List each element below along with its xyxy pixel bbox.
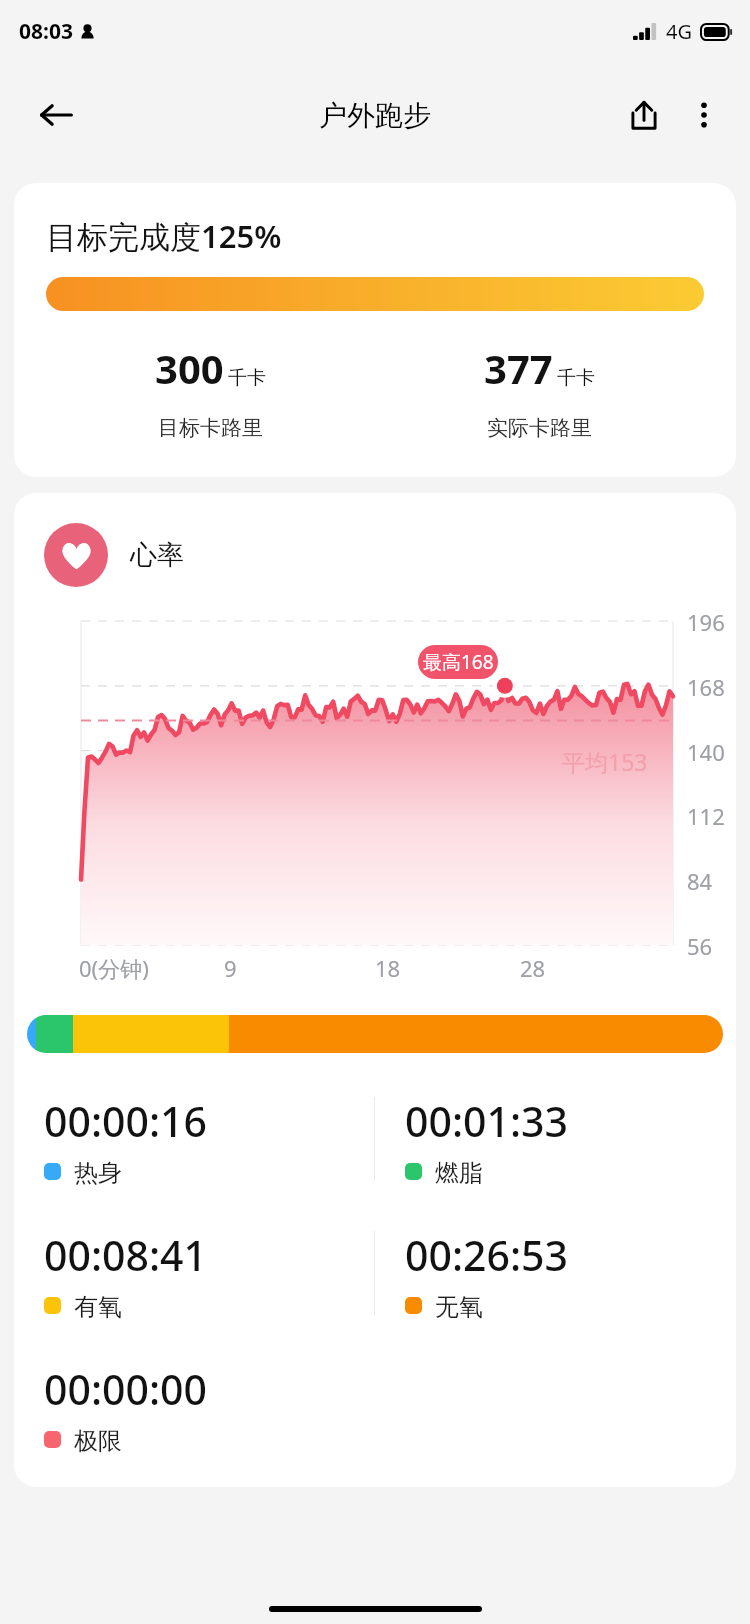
staticText: 00:26:53 [405,1227,569,1283]
staticText: 140 [687,737,725,767]
staticText: 168 [687,672,725,702]
staticText: 112 [687,801,725,831]
staticText: 00:01:33 [405,1093,569,1149]
staticText: 00:00:00 [44,1361,208,1417]
staticText: 目标卡路里 [158,415,263,441]
button[interactable]: Share [614,85,674,145]
staticText: 实际卡路里 [487,415,592,441]
staticText: 热身 [74,1158,122,1185]
staticText: 平均153 [562,746,648,777]
button[interactable]: More options [674,85,734,145]
staticText: 有氧 [74,1292,122,1319]
staticText: 4G [666,18,692,45]
button[interactable]: 心率 [44,523,184,587]
staticText: 18 [375,953,401,983]
staticText: 无氧 [435,1292,483,1319]
staticText: 300 [155,341,224,395]
staticText: 心率 [130,538,184,572]
staticText: 千卡 [557,366,595,390]
staticText: 极限 [74,1426,122,1453]
staticText: 84 [687,866,713,896]
staticText: 户外跑步 [319,98,431,133]
staticText: 56 [687,931,713,961]
staticText: 目标完成度125% [46,215,282,257]
staticText: 00:00:16 [44,1093,208,1149]
staticText: 千卡 [228,366,266,390]
staticText: 196 [687,607,725,637]
staticText: 28 [520,953,546,983]
staticText: 9 [224,953,237,983]
staticText: 377 [484,341,553,395]
staticText: 00:08:41 [44,1227,208,1283]
staticText: 最高168 [423,649,494,675]
button[interactable]: Back [26,85,86,145]
staticText: 08:03 [19,17,73,46]
staticText: 0(分钟) [79,953,149,983]
staticText: 燃脂 [435,1158,483,1185]
